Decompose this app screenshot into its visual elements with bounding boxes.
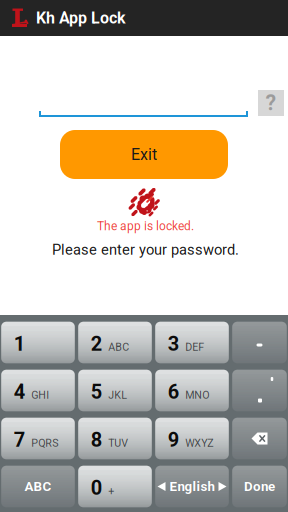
staticText: PQRS bbox=[31, 437, 58, 449]
staticText: JKL bbox=[108, 389, 127, 401]
staticText: GHI bbox=[31, 389, 49, 401]
button[interactable]: English language bbox=[155, 466, 229, 507]
button[interactable]: Period bbox=[232, 370, 287, 411]
button[interactable]: 7 bbox=[1, 418, 75, 459]
staticText: 7 bbox=[14, 428, 25, 452]
button[interactable]: Help bbox=[258, 90, 284, 116]
staticText: DEF bbox=[185, 341, 204, 353]
staticText: The app is locked. bbox=[97, 219, 194, 233]
button[interactable]: 0 bbox=[78, 466, 152, 507]
button[interactable]: 1 bbox=[1, 322, 75, 363]
button[interactable]: Done bbox=[232, 466, 287, 507]
staticText: 0 bbox=[91, 476, 102, 500]
staticText: MNO bbox=[185, 389, 209, 401]
staticText: Please enter your password. bbox=[52, 241, 239, 258]
staticText: 5 bbox=[91, 380, 102, 404]
staticText: 8 bbox=[91, 428, 102, 452]
staticText: TUV bbox=[108, 437, 128, 449]
staticText: 4 bbox=[14, 380, 25, 404]
button[interactable]: 8 bbox=[78, 418, 152, 459]
button[interactable]: Dash bbox=[232, 322, 287, 363]
staticText: 3 bbox=[168, 332, 179, 356]
staticText: English bbox=[169, 479, 214, 494]
button[interactable]: 5 bbox=[78, 370, 152, 411]
button[interactable]: 4 bbox=[1, 370, 75, 411]
staticText: 6 bbox=[168, 380, 179, 404]
staticText: Kh App Lock bbox=[36, 9, 126, 27]
button[interactable]: 2 bbox=[78, 322, 152, 363]
button[interactable]: 9 bbox=[155, 418, 229, 459]
staticText: 9 bbox=[168, 428, 179, 452]
staticText: 2 bbox=[91, 332, 102, 356]
staticText: WXYZ bbox=[185, 437, 213, 449]
staticText: Done bbox=[244, 479, 275, 494]
staticText: 1 bbox=[14, 332, 25, 356]
button[interactable]: 3 bbox=[155, 322, 229, 363]
button[interactable]: ABC keyboard bbox=[1, 466, 75, 507]
button[interactable]: Delete bbox=[232, 418, 287, 459]
staticText: ? bbox=[265, 90, 276, 115]
staticText: Exit bbox=[131, 145, 157, 164]
staticText: ABC bbox=[24, 479, 51, 494]
button[interactable]: Exit bbox=[60, 130, 228, 179]
staticText: + bbox=[108, 485, 114, 497]
button[interactable]: 6 bbox=[155, 370, 229, 411]
staticText: ABC bbox=[108, 341, 129, 353]
